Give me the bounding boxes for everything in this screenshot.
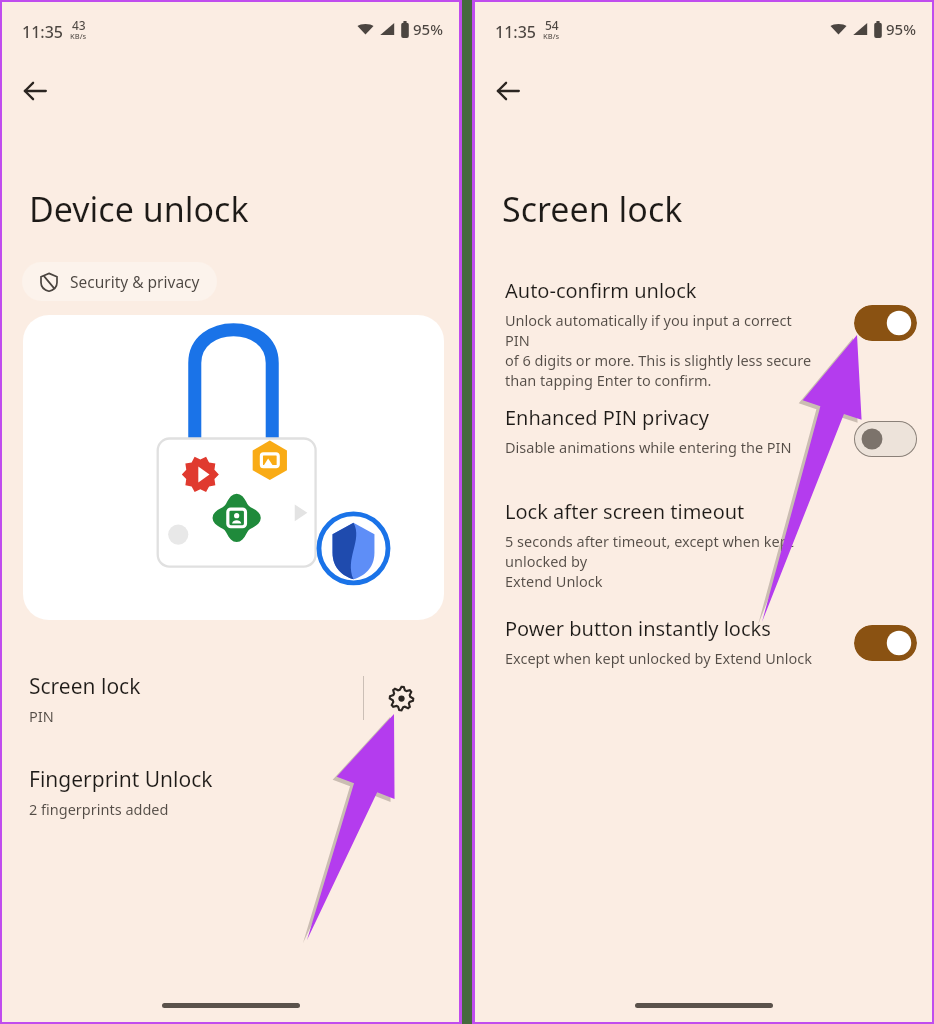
button[interactable]: Enhanced PIN privacy [475,402,932,467]
staticText: Fingerprint Unlock [29,765,213,794]
staticText: Enhanced PIN privacy [505,404,709,431]
button[interactable]: Auto-confirm unlock [475,275,932,400]
staticText: 43 [72,17,86,33]
staticText: Screen lock [502,186,683,232]
staticText: Unlock automatically if you input a corr… [505,310,812,390]
button[interactable]: Security & privacy [22,262,217,301]
button[interactable]: Power button instantly locks [475,613,932,678]
staticText: Except when kept unlocked by Extend Unlo… [505,648,812,668]
staticText: Power button instantly locks [505,615,771,642]
staticText: 2 fingerprints added [29,799,169,819]
button[interactable]: Screen lock settings [377,674,425,722]
staticText: Device unlock [29,186,249,232]
staticText: 95% [886,19,916,39]
button[interactable]: Auto-confirm unlock [854,305,917,341]
staticText: 11:35 [495,21,536,43]
button[interactable]: Screen lock [2,664,459,734]
staticText: KB/s [70,31,87,41]
button[interactable]: Power button instantly locks [854,625,917,661]
staticText: 54 [545,17,559,33]
staticText: Screen lock [29,672,141,701]
staticText: 11:35 [22,21,63,43]
staticText: Disable animations while entering the PI… [505,437,792,457]
button[interactable]: Fingerprint Unlock [2,757,459,827]
staticText: KB/s [543,31,560,41]
staticText: 95% [413,19,443,39]
button[interactable]: Back [12,68,58,114]
button[interactable]: Enhanced PIN privacy [854,421,917,457]
button[interactable]: Lock after screen timeout [475,496,932,601]
staticText: PIN [29,706,54,726]
button[interactable]: Back [485,68,531,114]
staticText: Security & privacy [70,271,200,292]
staticText: 5 seconds after timeout, except when kep… [505,531,812,591]
staticText: Lock after screen timeout [505,498,745,525]
staticText: Auto-confirm unlock [505,277,697,304]
